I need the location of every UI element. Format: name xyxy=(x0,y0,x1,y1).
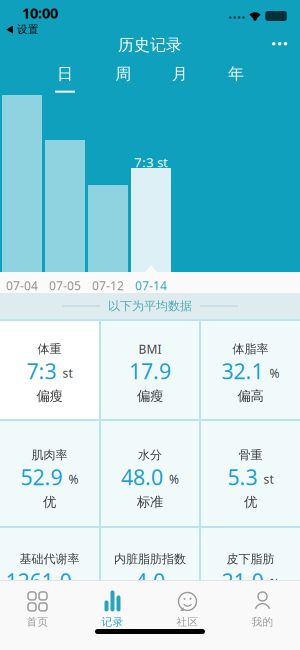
staticText: 4.0 xyxy=(135,567,165,595)
staticText: 体重 xyxy=(37,342,61,356)
staticText: 日 xyxy=(57,64,73,84)
staticText: 设置 xyxy=(17,23,39,36)
button[interactable]: 更多 xyxy=(266,36,293,51)
staticText: st xyxy=(263,471,273,487)
button[interactable]: 年 xyxy=(228,64,244,93)
button[interactable]: 皮下脂肪 xyxy=(201,528,300,633)
staticText: 首页 xyxy=(26,615,48,628)
staticText: 我的 xyxy=(251,615,273,628)
staticText: 07-05 xyxy=(49,277,81,293)
staticText: 皮下脂肪 xyxy=(226,552,274,566)
button[interactable]: 社区 xyxy=(150,587,225,633)
button[interactable]: 骨重 xyxy=(201,421,300,526)
button[interactable]: 返回设置 xyxy=(0,23,39,36)
button[interactable]: BMI xyxy=(101,321,199,419)
staticText: % xyxy=(269,365,279,381)
staticText: 52.9 xyxy=(20,463,62,491)
button[interactable]: 周 xyxy=(115,64,131,93)
staticText: 7:3 st xyxy=(134,153,168,171)
button[interactable]: 水分 xyxy=(101,421,199,526)
staticText: 内脏脂肪指数 xyxy=(114,552,186,566)
staticText: 肌肉率 xyxy=(31,448,67,462)
staticText: 优 xyxy=(244,494,257,510)
staticText: % xyxy=(169,471,179,487)
button[interactable]: 月 xyxy=(172,64,188,93)
button[interactable]: 肌肉率 xyxy=(0,421,99,526)
button[interactable]: 我的 xyxy=(225,587,300,633)
button[interactable]: 07-14 xyxy=(131,150,171,272)
staticText: 偏瘦 xyxy=(36,388,62,404)
staticText: BMI xyxy=(138,341,161,357)
staticText: 7:3 xyxy=(26,357,56,385)
staticText: 21.0 xyxy=(221,567,263,595)
staticText: 周 xyxy=(115,64,131,84)
staticText: 48.0 xyxy=(121,463,163,491)
button[interactable]: 首页 xyxy=(0,587,75,633)
staticText: 体脂率 xyxy=(232,342,268,356)
button[interactable]: 内脏脂肪指数 xyxy=(101,528,199,633)
staticText: 基础代谢率 xyxy=(19,552,79,566)
button[interactable]: 基础代谢率 xyxy=(0,528,99,633)
staticText: 32.1 xyxy=(221,357,263,385)
button[interactable]: 体重 xyxy=(0,321,99,419)
staticText: 07-12 xyxy=(92,277,124,293)
staticText: 1261.0 xyxy=(5,567,71,595)
button[interactable]: 日 xyxy=(55,64,75,93)
staticText: 10:00 xyxy=(22,3,58,22)
staticText: 记录 xyxy=(101,615,123,628)
staticText: 月 xyxy=(172,64,188,84)
staticText: 骨重 xyxy=(238,448,262,462)
staticText: 偏瘦 xyxy=(137,388,163,404)
button[interactable]: 记录 xyxy=(75,587,150,633)
staticText: 07-04 xyxy=(6,277,38,293)
staticText: % xyxy=(269,575,279,591)
staticText: 偏高 xyxy=(237,388,263,404)
staticText: 5.3 xyxy=(227,463,257,491)
staticText: st xyxy=(62,365,72,381)
staticText: 优 xyxy=(43,494,56,510)
staticText: kcal xyxy=(77,579,93,591)
staticText: % xyxy=(68,471,78,487)
staticText: 以下为平均数据 xyxy=(108,299,192,313)
staticText: 历史记录 xyxy=(118,35,182,55)
staticText: 水分 xyxy=(138,448,162,462)
staticText: 07-14 xyxy=(135,277,167,293)
staticText: 年 xyxy=(228,64,244,84)
staticText: 17.9 xyxy=(129,357,171,385)
staticText: 社区 xyxy=(176,615,198,628)
staticText: 标准 xyxy=(137,494,163,510)
button[interactable]: 体脂率 xyxy=(201,321,300,419)
